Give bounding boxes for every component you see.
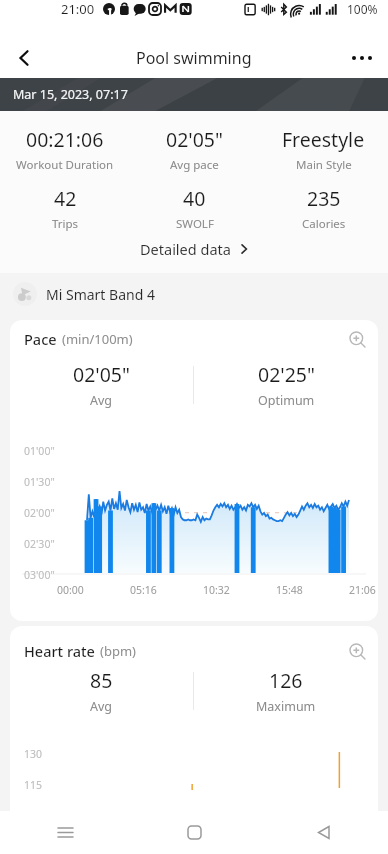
staticText: Avg: [90, 392, 113, 409]
staticText: 21:00: [61, 0, 95, 18]
staticText: 02'25": [258, 361, 315, 388]
button[interactable]: Mi Smart Band 4: [13, 273, 388, 315]
staticText: 02'00": [24, 506, 55, 520]
staticText: 115: [24, 778, 43, 792]
staticText: Mi Smart Band 4: [46, 285, 155, 304]
staticText: 03'00": [24, 568, 55, 582]
staticText: 00:21:06: [26, 126, 104, 153]
staticText: 126: [269, 667, 303, 694]
staticText: Maximum: [256, 698, 316, 715]
staticText: 130: [24, 747, 43, 761]
button[interactable]: Back: [259, 811, 388, 854]
staticText: 40: [183, 185, 206, 212]
staticText: 01'30": [24, 475, 55, 489]
staticText: Heart rate: [24, 641, 95, 661]
staticText: SWOLF: [176, 216, 214, 232]
button[interactable]: Zoom in: [342, 324, 372, 354]
staticText: Pool swimming: [136, 47, 252, 69]
staticText: Freestyle: [282, 126, 365, 153]
staticText: Avg pace: [170, 157, 219, 173]
staticText: 235: [307, 185, 341, 212]
staticText: Pace: [24, 329, 57, 349]
staticText: Workout Duration: [16, 157, 114, 173]
staticText: (min/100m): [62, 330, 133, 348]
staticText: Calories: [302, 216, 346, 232]
staticText: 15:48: [276, 583, 303, 597]
staticText: 02'05": [73, 361, 130, 388]
staticText: 02'30": [24, 537, 55, 551]
staticText: 05:16: [130, 583, 157, 597]
staticText: 02'05": [166, 126, 223, 153]
button[interactable]: Recent apps: [0, 811, 130, 854]
staticText: 00:00: [57, 583, 84, 597]
button[interactable]: More options: [344, 40, 380, 76]
staticText: Detailed data: [140, 239, 231, 259]
staticText: (bpm): [100, 642, 136, 660]
button[interactable]: Back: [6, 40, 42, 76]
staticText: 42: [54, 185, 77, 212]
staticText: 21:06: [349, 583, 376, 597]
button[interactable]: Detailed data: [0, 236, 388, 262]
staticText: 10:32: [203, 583, 230, 597]
staticText: 100%: [347, 1, 378, 17]
staticText: Optimum: [258, 392, 315, 409]
staticText: 01'00": [24, 444, 55, 458]
staticText: Avg: [90, 698, 113, 715]
staticText: Trips: [52, 216, 79, 232]
button[interactable]: Home: [130, 811, 259, 854]
staticText: Main Style: [296, 157, 352, 173]
button[interactable]: Zoom in: [342, 636, 372, 666]
staticText: 85: [90, 667, 113, 694]
staticText: Mar 15, 2023, 07:17: [13, 86, 128, 103]
